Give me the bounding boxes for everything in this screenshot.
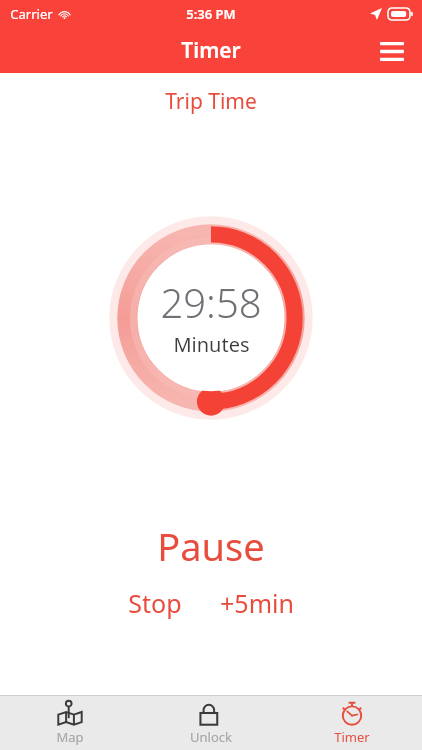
- staticText: Timer: [334, 728, 370, 746]
- staticText: Unlock: [190, 728, 232, 746]
- staticText: Pause: [0, 520, 422, 572]
- staticText: Carrier: [10, 5, 53, 23]
- button[interactable]: +5min: [210, 582, 304, 624]
- button[interactable]: Menu: [372, 31, 412, 71]
- staticText: Timer: [181, 36, 241, 65]
- button[interactable]: Pause: [0, 520, 422, 572]
- button[interactable]: Timer: [281, 696, 422, 750]
- button[interactable]: Stop: [118, 582, 192, 624]
- staticText: Map: [56, 728, 84, 746]
- button[interactable]: Unlock: [140, 696, 281, 750]
- staticText: Trip Time: [0, 87, 422, 116]
- staticText: 29:58: [160, 275, 262, 329]
- button[interactable]: Map: [0, 696, 140, 750]
- staticText: 5:36 PM: [186, 5, 236, 23]
- staticText: Stop: [128, 586, 182, 620]
- staticText: Minutes: [173, 331, 250, 358]
- staticText: +5min: [220, 586, 294, 620]
